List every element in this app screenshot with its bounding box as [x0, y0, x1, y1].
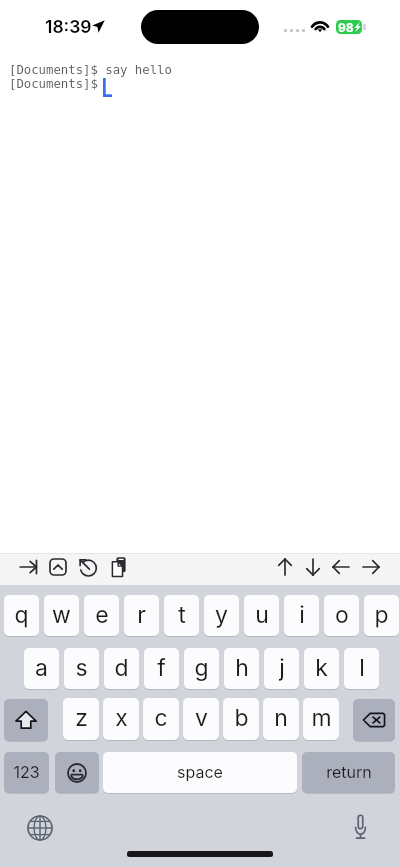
- button[interactable]: Left: [327, 553, 355, 585]
- button[interactable]: Tab: [15, 553, 43, 585]
- button[interactable]: h: [224, 648, 259, 689]
- button[interactable]: space: [103, 752, 297, 793]
- staticText: g: [194, 654, 209, 682]
- button[interactable]: o: [324, 595, 359, 636]
- staticText: space: [177, 762, 223, 781]
- button[interactable]: j: [264, 648, 299, 689]
- button[interactable]: k: [304, 648, 339, 689]
- staticText: t: [178, 601, 186, 629]
- staticText: u: [255, 601, 269, 629]
- button[interactable]: g: [184, 648, 219, 689]
- button[interactable]: i: [284, 595, 319, 636]
- staticText: 123: [13, 762, 40, 781]
- staticText: s: [75, 654, 88, 682]
- button[interactable]: y: [204, 595, 239, 636]
- button[interactable]: Down: [299, 553, 327, 585]
- staticText: l: [359, 654, 365, 682]
- button[interactable]: Emoji: [55, 752, 99, 793]
- button[interactable]: e: [84, 595, 119, 636]
- button[interactable]: Shift: [4, 699, 48, 741]
- button[interactable]: Backspace: [353, 699, 395, 741]
- button[interactable]: t: [164, 595, 199, 636]
- staticText: 98: [338, 20, 354, 34]
- staticText: f: [157, 654, 166, 682]
- button[interactable]: w: [44, 595, 79, 636]
- staticText: m: [311, 704, 332, 732]
- button[interactable]: Change keyboard: [22, 810, 58, 846]
- button[interactable]: 123: [4, 752, 49, 793]
- staticText: x: [115, 704, 128, 732]
- staticText: o: [335, 601, 349, 629]
- staticText: e: [95, 601, 109, 629]
- staticText: j: [279, 654, 285, 682]
- staticText: [Documents]$ say hello: [9, 63, 172, 77]
- button[interactable]: Dictation: [342, 809, 378, 845]
- button[interactable]: l: [344, 648, 379, 689]
- button[interactable]: Control: [44, 553, 72, 585]
- staticText: y: [215, 601, 228, 629]
- staticText: return: [326, 762, 372, 781]
- button[interactable]: c: [143, 698, 179, 740]
- staticText: k: [315, 654, 328, 682]
- button[interactable]: Up: [271, 553, 299, 585]
- staticText: d: [114, 654, 129, 682]
- button[interactable]: n: [263, 698, 299, 740]
- staticText: p: [374, 601, 389, 629]
- staticText: [Documents]$: [9, 77, 98, 91]
- staticText: b: [234, 704, 249, 732]
- button[interactable]: q: [4, 595, 39, 636]
- staticText: n: [274, 704, 288, 732]
- staticText: 18:39: [45, 16, 92, 37]
- button[interactable]: History: [74, 553, 102, 585]
- button[interactable]: Paste: [105, 553, 133, 585]
- staticText: r: [137, 601, 146, 629]
- button[interactable]: d: [104, 648, 139, 689]
- button[interactable]: b: [223, 698, 259, 740]
- button[interactable]: r: [124, 595, 159, 636]
- button[interactable]: s: [64, 648, 99, 689]
- button[interactable]: x: [103, 698, 139, 740]
- button[interactable]: f: [144, 648, 179, 689]
- button[interactable]: a: [24, 648, 59, 689]
- button[interactable]: p: [364, 595, 399, 636]
- button[interactable]: m: [303, 698, 339, 740]
- staticText: h: [235, 654, 249, 682]
- staticText: i: [299, 601, 305, 629]
- button[interactable]: Right: [357, 553, 385, 585]
- button[interactable]: return: [302, 752, 395, 793]
- staticText: v: [195, 704, 208, 732]
- staticText: q: [14, 601, 29, 629]
- staticText: z: [75, 704, 88, 732]
- staticText: w: [52, 601, 71, 629]
- staticText: c: [154, 704, 168, 732]
- button[interactable]: u: [244, 595, 279, 636]
- staticText: a: [35, 654, 48, 682]
- button[interactable]: z: [63, 698, 99, 740]
- button[interactable]: v: [183, 698, 219, 740]
